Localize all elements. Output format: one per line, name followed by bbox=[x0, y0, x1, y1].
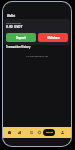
button[interactable]: Wallet bbox=[43, 129, 55, 136]
staticText: Deposit bbox=[16, 36, 26, 40]
button[interactable]: Trade bbox=[28, 129, 35, 136]
button[interactable]: Profile bbox=[59, 129, 66, 136]
button[interactable]: Home bbox=[6, 129, 13, 136]
staticText: Wallet bbox=[46, 131, 53, 134]
staticText: Total Balance bbox=[6, 21, 21, 24]
button[interactable]: Withdraw bbox=[38, 33, 68, 42]
button[interactable]: Futures bbox=[36, 129, 43, 136]
staticText: Wallet bbox=[7, 14, 16, 18]
staticText: No transactions yet bbox=[26, 54, 48, 57]
button[interactable]: Deposit bbox=[6, 33, 36, 42]
staticText: Withdraw bbox=[47, 36, 60, 40]
staticText: 0.00 USDT bbox=[6, 24, 23, 29]
button[interactable]: Markets bbox=[16, 129, 23, 136]
staticText: Transaction History bbox=[6, 45, 31, 48]
